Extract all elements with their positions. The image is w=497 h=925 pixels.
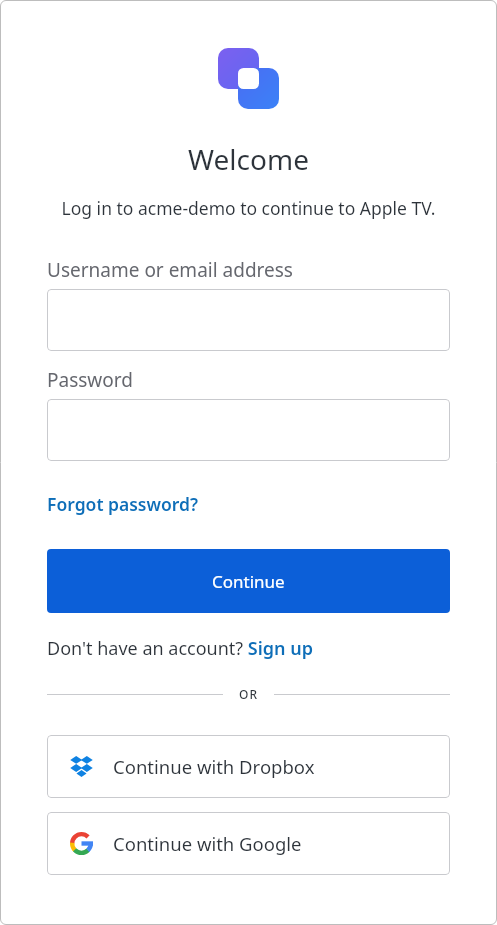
staticText: Continue <box>212 570 285 593</box>
staticText: Password <box>47 367 133 393</box>
button[interactable]: Continue with Google <box>47 812 450 875</box>
button[interactable]: Continue <box>47 549 450 613</box>
button[interactable] <box>47 399 450 461</box>
staticText: OR <box>239 686 258 702</box>
button[interactable]: Don't have an account? Sign up <box>47 636 313 661</box>
staticText: Username or email address <box>47 257 293 283</box>
staticText: Continue with Google <box>113 831 302 856</box>
button[interactable]: Forgot password? <box>47 492 199 516</box>
staticText: Log in to acme-demo to continue to Apple… <box>47 196 450 220</box>
staticText: Welcome <box>47 140 450 178</box>
button[interactable] <box>47 289 450 351</box>
button[interactable]: Continue with Dropbox <box>47 735 450 798</box>
staticText: Continue with Dropbox <box>113 754 315 779</box>
